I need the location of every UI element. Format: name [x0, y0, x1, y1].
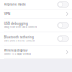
button[interactable]: USB debugging	[0, 19, 72, 32]
staticText: Connect to a display wirelessly	[4, 53, 31, 55]
staticText: VPN	[4, 12, 10, 16]
staticText: Share phone's internet connection	[4, 40, 35, 42]
staticText: Bluetooth tethering	[4, 35, 34, 39]
button[interactable]: VPN	[0, 9, 72, 19]
button[interactable]: Wireless display	[0, 46, 72, 59]
button[interactable]: Bluetooth tethering	[0, 32, 72, 46]
staticText: Airplane mode	[4, 3, 26, 6]
staticText: USB debugging	[4, 22, 28, 25]
button[interactable]: Airplane mode	[0, 0, 72, 9]
staticText: Wireless display	[4, 49, 28, 52]
staticText: Debug mode when USB is connected	[4, 26, 37, 29]
